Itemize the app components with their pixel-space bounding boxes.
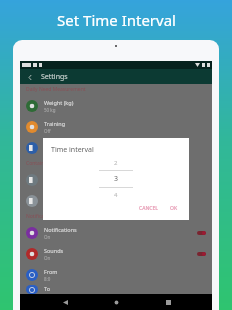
- staticText: To: [44, 285, 51, 292]
- button[interactable]: Bottle: [20, 190, 212, 211]
- staticText: Daily Need Measurement: [26, 86, 86, 93]
- button[interactable]: Recents: [161, 295, 175, 309]
- staticText: From: [44, 268, 58, 275]
- button[interactable]: From: [20, 264, 212, 285]
- button[interactable]: Toggle Sounds: [197, 252, 206, 256]
- button[interactable]: CANCEL: [136, 203, 161, 214]
- button[interactable]: Back: [25, 72, 35, 82]
- staticText: Settings: [41, 72, 68, 82]
- staticText: Training: [44, 120, 66, 127]
- staticText: Set Time Interval: [57, 10, 176, 30]
- button[interactable]: Weight (kg): [20, 95, 212, 116]
- button[interactable]: Glass: [20, 169, 212, 190]
- staticText: Time interval: [51, 145, 94, 155]
- button[interactable]: Daily Need: [20, 137, 212, 158]
- button[interactable]: Sounds: [20, 243, 212, 264]
- staticText: 3: [114, 174, 119, 184]
- staticText: 50 kg: [44, 107, 56, 113]
- staticText: CANCEL: [139, 205, 158, 212]
- staticText: Notifications: [44, 226, 77, 233]
- staticText: 2: [114, 159, 118, 167]
- button[interactable]: Toggle Notifications: [197, 231, 206, 235]
- button[interactable]: Back: [58, 295, 72, 309]
- button[interactable]: Training: [20, 116, 212, 137]
- staticText: Sounds: [44, 247, 64, 254]
- staticText: 2500 ml: [44, 149, 61, 155]
- staticText: Container Sizes: [26, 160, 63, 167]
- button[interactable]: OK: [167, 203, 181, 214]
- staticText: 4: [114, 191, 118, 199]
- button[interactable]: Home: [109, 295, 123, 309]
- button[interactable]: To: [20, 285, 212, 294]
- staticText: Weight (kg): [44, 99, 74, 106]
- staticText: 8:0: [44, 276, 51, 282]
- button[interactable]: Notifications: [20, 222, 212, 243]
- staticText: On: [44, 255, 51, 261]
- staticText: On: [44, 234, 51, 240]
- staticText: OK: [170, 205, 178, 212]
- staticText: Notifications settings: [26, 213, 76, 220]
- staticText: Daily Need: [44, 141, 72, 148]
- staticText: Off: [44, 128, 51, 134]
